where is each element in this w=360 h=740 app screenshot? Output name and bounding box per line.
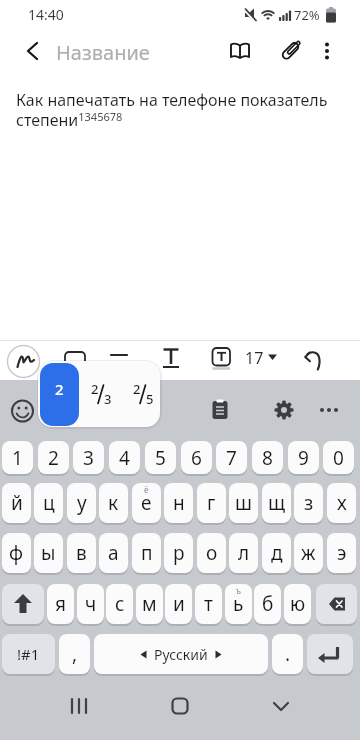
button[interactable]: 0: [323, 441, 354, 474]
button[interactable]: [2, 584, 44, 624]
button[interactable]: т: [195, 584, 222, 624]
button[interactable]: [120, 390, 180, 430]
button[interactable]: [0, 676, 120, 740]
button[interactable]: о: [197, 533, 226, 573]
button[interactable]: ч: [77, 584, 104, 624]
button[interactable]: 2: [38, 441, 69, 474]
staticText: т: [204, 591, 213, 617]
button[interactable]: 1: [2, 441, 33, 474]
button[interactable]: [220, 31, 260, 71]
button[interactable]: в: [67, 533, 96, 573]
button[interactable]: н: [164, 483, 193, 523]
staticText: ,: [72, 641, 78, 667]
button[interactable]: г: [197, 483, 226, 523]
staticText: о: [206, 540, 218, 566]
button[interactable]: э: [327, 533, 356, 573]
button[interactable]: й: [2, 483, 31, 523]
button[interactable]: а: [99, 533, 128, 573]
staticText: 14:40: [28, 5, 64, 24]
staticText: степени1345678: [16, 109, 123, 131]
button[interactable]: п: [132, 533, 161, 573]
button[interactable]: ь: [225, 584, 252, 624]
staticText: 0: [333, 445, 344, 471]
staticText: я: [55, 591, 66, 617]
button[interactable]: б: [254, 584, 281, 624]
staticText: 2: [133, 380, 141, 398]
button[interactable]: !#1: [2, 634, 55, 674]
button[interactable]: [240, 390, 300, 430]
button[interactable]: [0, 340, 52, 380]
staticText: у: [77, 490, 87, 516]
button[interactable]: Русский: [94, 634, 268, 674]
button[interactable]: 4: [109, 441, 140, 474]
staticText: ж: [301, 540, 316, 566]
staticText: х: [337, 490, 347, 516]
staticText: л: [238, 540, 250, 566]
button[interactable]: [240, 676, 360, 740]
button[interactable]: я: [47, 584, 74, 624]
button[interactable]: [156, 340, 207, 380]
button[interactable]: 2: [123, 361, 160, 427]
button[interactable]: [12, 31, 52, 71]
button[interactable]: с: [106, 584, 133, 624]
button[interactable]: р: [164, 533, 193, 573]
staticText: 5: [146, 390, 154, 408]
button[interactable]: 3: [73, 441, 104, 474]
button[interactable]: л: [229, 533, 258, 573]
staticText: е: [141, 490, 152, 516]
button[interactable]: [52, 340, 104, 380]
button[interactable]: [307, 634, 353, 674]
button[interactable]: ш: [229, 483, 258, 523]
button[interactable]: [120, 676, 240, 740]
button[interactable]: [270, 31, 310, 71]
button[interactable]: 2: [40, 363, 79, 426]
staticText: щ: [268, 490, 286, 516]
staticText: Название: [56, 39, 150, 66]
button[interactable]: 9: [288, 441, 319, 474]
staticText: 4: [119, 445, 130, 471]
button[interactable]: [258, 340, 309, 380]
button[interactable]: [104, 340, 156, 380]
button[interactable]: м: [136, 584, 163, 624]
button[interactable]: .: [272, 634, 303, 674]
button[interactable]: ф: [2, 533, 31, 573]
staticText: э: [337, 540, 347, 566]
button[interactable]: х: [327, 483, 356, 523]
button[interactable]: у: [67, 483, 96, 523]
button[interactable]: з: [294, 483, 323, 523]
staticText: 2: [55, 379, 64, 399]
staticText: 6: [191, 445, 202, 471]
button[interactable]: 2: [81, 361, 120, 427]
button[interactable]: щ: [262, 483, 291, 523]
button[interactable]: ю: [284, 584, 311, 624]
button[interactable]: 8: [252, 441, 283, 474]
button[interactable]: д: [262, 533, 291, 573]
button[interactable]: ,: [59, 634, 90, 674]
button[interactable]: и: [165, 584, 192, 624]
button[interactable]: [180, 390, 240, 430]
button[interactable]: [0, 390, 60, 430]
staticText: г: [207, 490, 216, 516]
button[interactable]: 5: [145, 441, 176, 474]
button[interactable]: [316, 584, 357, 624]
button[interactable]: [300, 390, 360, 430]
staticText: ы: [41, 540, 56, 566]
button[interactable]: 7: [216, 441, 247, 474]
button[interactable]: е: [132, 483, 161, 523]
staticText: .: [285, 641, 291, 667]
button[interactable]: к: [99, 483, 128, 523]
staticText: 8: [262, 445, 273, 471]
staticText: 7: [226, 445, 237, 471]
button[interactable]: ц: [34, 483, 63, 523]
button[interactable]: 6: [181, 441, 212, 474]
button[interactable]: [308, 31, 346, 69]
staticText: ь: [233, 591, 244, 617]
button[interactable]: ы: [34, 533, 63, 573]
button[interactable]: [207, 340, 258, 380]
button[interactable]: [309, 340, 360, 380]
staticText: з: [304, 490, 314, 516]
button[interactable]: ж: [294, 533, 323, 573]
staticText: 1: [12, 445, 23, 471]
button[interactable]: [60, 390, 120, 430]
staticText: с: [115, 591, 125, 617]
